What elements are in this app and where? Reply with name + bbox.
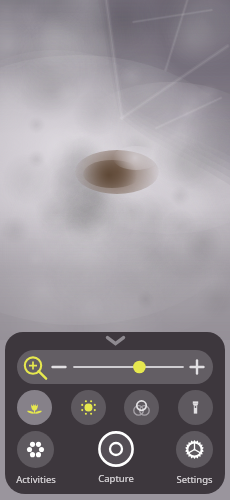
button[interactable]: Capture — [87, 431, 144, 485]
button[interactable]: Flashlight — [178, 390, 213, 425]
button[interactable]: Filters — [124, 390, 159, 425]
staticText: Activities — [16, 473, 56, 486]
button[interactable]: Collapse panel — [5, 332, 225, 350]
staticText: Settings — [176, 473, 213, 486]
button[interactable]: Activities — [7, 431, 64, 486]
button[interactable]: Settings — [166, 431, 223, 486]
button[interactable]: Zoom slider — [17, 350, 213, 384]
button[interactable]: Macro — [17, 390, 52, 425]
button[interactable]: Brightness — [71, 390, 106, 425]
staticText: Capture — [98, 472, 134, 485]
